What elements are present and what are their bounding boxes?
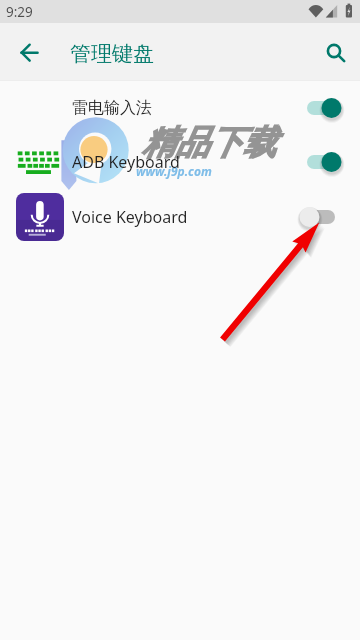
button[interactable]: 雷电输入法	[0, 81, 360, 134]
button[interactable]: On	[298, 147, 344, 177]
staticText: 管理键盘	[70, 41, 154, 67]
button[interactable]: Voice Keyboard	[0, 189, 360, 245]
button[interactable]: ADB Keyboard	[0, 134, 360, 189]
button[interactable]: Search	[312, 31, 354, 73]
button[interactable]: Off	[298, 202, 344, 232]
staticText: 雷电输入法	[72, 98, 152, 118]
staticText: www.j9p.com	[136, 163, 212, 179]
staticText: 精品下载	[142, 122, 276, 164]
staticText: Voice Keyboard	[72, 206, 188, 228]
button[interactable]: On	[298, 93, 344, 123]
staticText: 9:29	[6, 3, 33, 21]
staticText: ADB Keyboard	[72, 151, 180, 173]
button[interactable]: Back	[8, 31, 50, 73]
